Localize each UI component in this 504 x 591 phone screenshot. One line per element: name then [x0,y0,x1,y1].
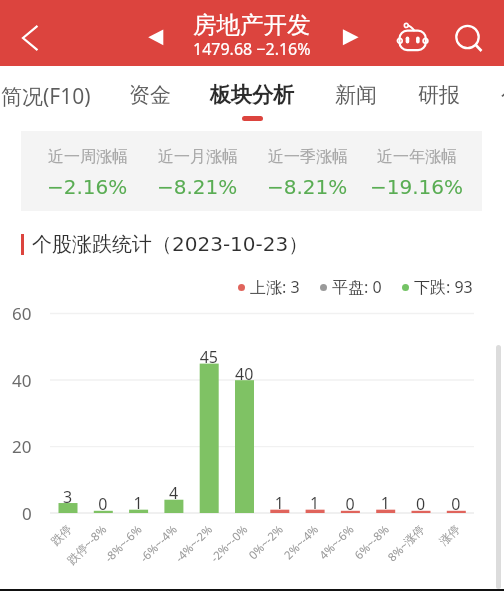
button[interactable]: Next sector [334,20,368,54]
staticText: 近一年涨幅 [377,147,457,167]
staticText: 近一月涨幅 [158,147,238,167]
staticText: −19.16% [370,175,464,198]
button[interactable]: 资金 [111,66,153,121]
staticText: 房地产开发 [193,10,311,40]
staticText: 研报 [418,82,460,108]
staticText: 公司 [501,82,504,108]
staticText: 资金 [129,82,171,108]
staticText: 平盘: 0 [332,276,382,298]
button[interactable]: Previous sector [138,20,172,54]
staticText: 近一季涨幅 [268,147,348,167]
button[interactable]: AI assistant [390,14,434,58]
staticText: 简况(F10) [1,82,91,111]
button[interactable]: 板块分析 [192,66,276,121]
staticText: −2.16% [47,175,128,198]
staticText: 1479.68 −2.16% [193,38,311,60]
staticText: 下跌: 93 [414,276,473,298]
button[interactable]: 新闻 [317,66,359,121]
staticText: −8.21% [157,175,238,198]
staticText: 新闻 [335,82,377,108]
staticText: 个股涨跌统计（2023-10-23） [32,232,309,257]
staticText: −8.21% [267,175,348,198]
staticText: 近一周涨幅 [48,147,128,167]
staticText: 板块分析 [210,82,294,108]
button[interactable]: Search [445,14,489,58]
staticText: 上涨: 3 [250,276,300,298]
button[interactable]: 研报 [400,66,442,121]
button[interactable]: 简况(F10) [0,66,73,121]
button[interactable]: 公司 [483,66,504,121]
button[interactable]: Back [8,14,52,58]
